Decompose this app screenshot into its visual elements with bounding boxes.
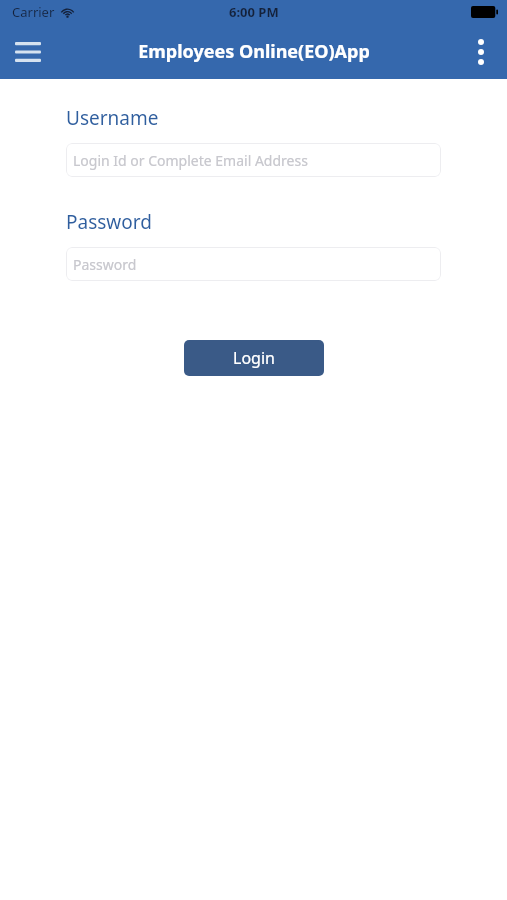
staticText: 6:00 PM bbox=[229, 3, 279, 21]
button[interactable]: Login Id or Complete Email Address bbox=[66, 143, 441, 177]
staticText: Login Id or Complete Email Address bbox=[73, 151, 308, 170]
button[interactable]: Login bbox=[184, 340, 324, 376]
staticText: Password bbox=[66, 209, 152, 235]
staticText: Carrier bbox=[12, 3, 55, 21]
staticText: Username bbox=[66, 105, 159, 131]
staticText: Employees Online(EO)App bbox=[138, 39, 370, 64]
staticText: Password bbox=[73, 255, 137, 274]
button[interactable]: More options bbox=[455, 26, 507, 78]
staticText: Login bbox=[233, 347, 275, 369]
button[interactable]: Open navigation menu bbox=[0, 24, 56, 79]
button[interactable]: Password bbox=[66, 247, 441, 281]
